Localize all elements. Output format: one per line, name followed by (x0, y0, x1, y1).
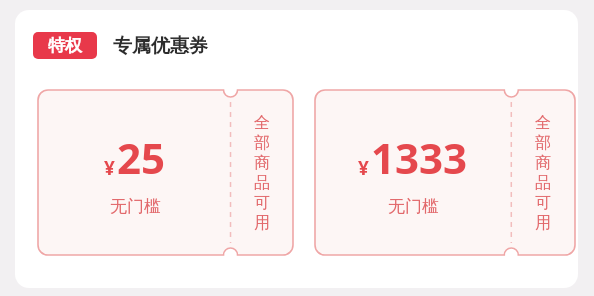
staticText: 可 (254, 193, 270, 213)
staticText: 无门槛 (110, 196, 161, 217)
staticText: 全 (254, 113, 270, 133)
staticText: ¥ (104, 155, 115, 181)
staticText: 商 (535, 153, 551, 173)
staticText: 用 (535, 213, 551, 233)
staticText: ¥ (358, 155, 369, 181)
staticText: 用 (254, 213, 270, 233)
staticText: 品 (254, 173, 270, 193)
staticText: 全 (535, 113, 551, 133)
button[interactable]: ¥ (38, 90, 293, 255)
staticText: 部 (254, 133, 270, 153)
staticText: 无门槛 (388, 196, 439, 217)
staticText: 专属优惠券 (113, 34, 208, 58)
staticText: 品 (535, 173, 551, 193)
staticText: 1333 (371, 129, 468, 186)
staticText: 商 (254, 153, 270, 173)
button[interactable]: 特权 (33, 32, 97, 59)
staticText: 部 (535, 133, 551, 153)
staticText: 特权 (48, 35, 82, 56)
staticText: 可 (535, 193, 551, 213)
button[interactable]: ¥ (315, 90, 575, 255)
staticText: 25 (117, 129, 166, 186)
